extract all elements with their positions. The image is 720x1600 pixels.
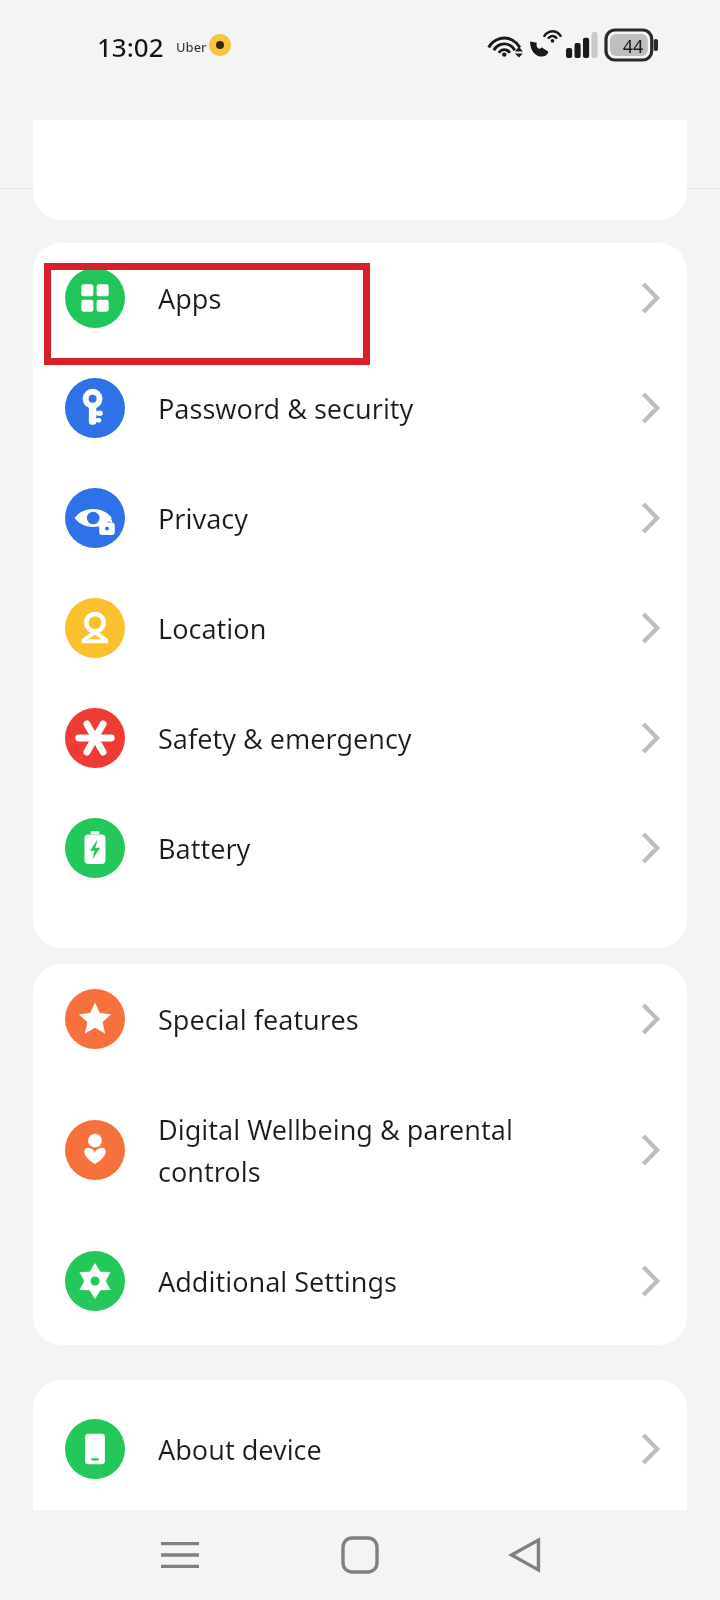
staticText: Digital Wellbeing & parental controls: [158, 1111, 558, 1190]
button[interactable]: Safety & emergency: [33, 683, 687, 793]
staticText: Location: [158, 610, 598, 647]
button[interactable]: Privacy: [33, 463, 687, 573]
staticText: 44: [615, 34, 651, 59]
button[interactable]: Digital Wellbeing & parental controls: [33, 1074, 687, 1226]
staticText: Special features: [158, 1001, 598, 1038]
button[interactable]: Home: [320, 1515, 400, 1595]
button[interactable]: Special features: [33, 964, 687, 1074]
button[interactable]: About device: [33, 1380, 687, 1504]
staticText: 13:02: [97, 29, 164, 64]
staticText: Safety & emergency: [158, 720, 598, 757]
staticText: About device: [158, 1431, 598, 1468]
staticText: Uber: [176, 38, 207, 56]
button[interactable]: Location: [33, 573, 687, 683]
button[interactable]: Recent apps: [140, 1515, 220, 1595]
button[interactable]: Password & security: [33, 353, 687, 463]
staticText: Apps: [158, 280, 598, 317]
button[interactable]: Additional Settings: [33, 1226, 687, 1336]
button[interactable]: Back: [485, 1515, 565, 1595]
staticText: Additional Settings: [158, 1263, 598, 1300]
button[interactable]: Battery: [33, 793, 687, 903]
button[interactable]: Apps: [33, 243, 687, 353]
staticText: Privacy: [158, 500, 598, 537]
staticText: Settings: [48, 112, 166, 154]
staticText: Password & security: [158, 390, 598, 427]
staticText: Battery: [158, 830, 598, 867]
